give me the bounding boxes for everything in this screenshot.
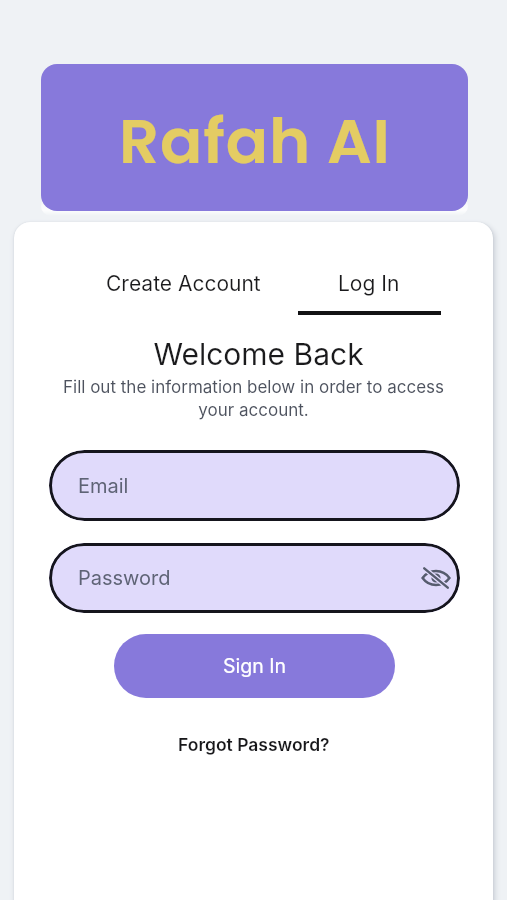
button[interactable]: Show password (416, 558, 456, 598)
staticText: Welcome Back (19, 336, 493, 372)
button[interactable]: Log In (295, 265, 443, 315)
staticText: Forgot Password? (178, 734, 330, 755)
staticText: Create Account (106, 271, 261, 296)
staticText: Email (78, 474, 129, 498)
staticText: Fill out the information below in order … (57, 377, 450, 420)
button[interactable]: Sign In (114, 634, 395, 698)
button[interactable]: Forgot Password? (168, 728, 340, 761)
staticText: Sign In (223, 654, 286, 678)
staticText: Log In (338, 271, 400, 296)
button[interactable]: Rafah AI (41, 64, 468, 211)
staticText: Rafah AI (119, 97, 391, 185)
button[interactable]: Password (49, 543, 460, 613)
button[interactable]: Email (49, 450, 460, 521)
staticText: Password (78, 566, 171, 590)
button[interactable]: Create Account (98, 265, 269, 302)
